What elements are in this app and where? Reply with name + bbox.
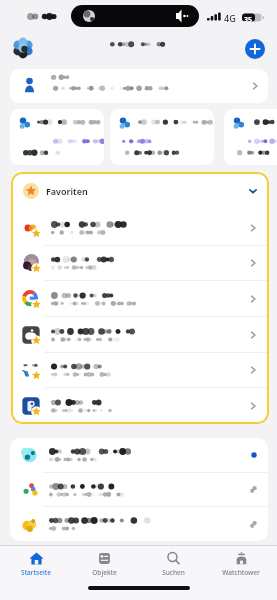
button[interactable]: [10, 507, 268, 541]
button[interactable]: [11, 317, 269, 352]
button[interactable]: [110, 109, 214, 165]
button[interactable]: [11, 246, 269, 280]
staticText: 4G: [224, 12, 236, 24]
button[interactable]: Startseite: [4, 546, 68, 577]
staticText: 35: [244, 15, 253, 25]
button[interactable]: [10, 473, 268, 506]
button[interactable]: [11, 353, 269, 387]
button[interactable]: [10, 69, 268, 103]
button[interactable]: [11, 388, 269, 423]
button[interactable]: Suchen: [141, 546, 205, 577]
button[interactable]: Favoriten: [11, 172, 269, 210]
button[interactable]: [10, 109, 104, 165]
staticText: Objekte: [92, 568, 117, 577]
button[interactable]: Hinzufügen: [245, 39, 265, 59]
button[interactable]: [224, 109, 277, 165]
staticText: Watchtower: [222, 568, 260, 577]
button[interactable]: Watchtower: [209, 546, 273, 577]
button[interactable]: Objekte: [72, 546, 136, 577]
staticText: Favoriten: [46, 185, 88, 197]
staticText: Startseite: [21, 568, 51, 577]
staticText: Suchen: [162, 568, 185, 577]
button[interactable]: [10, 438, 268, 472]
button[interactable]: [11, 281, 269, 316]
button[interactable]: [11, 210, 269, 245]
